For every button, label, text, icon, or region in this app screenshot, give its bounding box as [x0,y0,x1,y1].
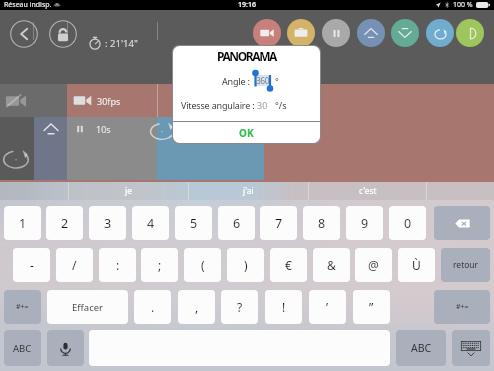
button[interactable]: Effacer [47,290,128,324]
button[interactable]: ? [221,290,258,324]
staticText: 7 [275,215,283,232]
button[interactable]: Take photo [287,19,315,47]
staticText: 360 [256,75,270,87]
button[interactable]: 9 [346,206,383,240]
button[interactable]: ( [184,248,221,282]
button[interactable] [67,117,157,180]
button[interactable]: Up [357,19,385,47]
staticText: ’ [326,299,329,315]
staticText: #+= [456,302,469,312]
staticText: 19:16 [238,0,256,10]
staticText: °/s [275,99,287,111]
button[interactable]: Rotate [426,19,454,47]
button[interactable]: Down [391,19,419,47]
staticText: - [30,257,34,273]
button[interactable]: ! [265,290,302,324]
staticText: : 21'14" [105,37,138,50]
staticText: ; [158,257,162,273]
button[interactable]: Ù [398,248,435,282]
button[interactable] [434,206,490,240]
staticText: ” [369,299,374,315]
button[interactable]: 6 [218,206,255,240]
staticText: 0 [404,215,412,232]
button[interactable]: . [134,290,171,324]
button[interactable]: : [99,248,136,282]
button[interactable]: c'est [309,182,426,200]
staticText: retour [453,259,479,271]
button[interactable]: retour [441,248,490,282]
button[interactable]: & [313,248,350,282]
staticText: 1 [19,215,27,232]
button[interactable]: ” [353,290,390,324]
staticText: je [125,185,132,197]
staticText: 100 % [453,0,473,10]
staticText: 4 [147,215,155,232]
button[interactable]: je [69,182,188,200]
button[interactable] [47,330,84,366]
button[interactable]: ’ [309,290,346,324]
button[interactable]: 7 [260,206,297,240]
button[interactable]: / [56,248,93,282]
staticText: ° [275,75,279,87]
staticText: : [116,257,120,273]
button[interactable]: - [13,248,50,282]
button[interactable]: 3 [89,206,126,240]
staticText: 9 [361,215,369,232]
staticText: PANORAMA [217,48,277,64]
staticText: j'ai [243,185,254,197]
staticText: @ [368,257,379,273]
button[interactable]: ; [141,248,178,282]
button[interactable]: j'ai [189,182,308,200]
staticText: 2 [61,215,69,232]
staticText: Vitesse angulaire : [181,99,255,111]
button[interactable]: 4 [132,206,169,240]
button[interactable]: #+= [434,290,490,324]
button[interactable]: #+= [4,290,41,324]
staticText: 5 [190,215,198,232]
button[interactable]: Record video [253,19,281,47]
button[interactable]: ABC [4,330,41,366]
staticText: ( [201,257,205,273]
button[interactable]: 1 [4,206,41,240]
staticText: 10s [96,123,111,135]
button[interactable]: ) [227,248,264,282]
staticText: ABC [13,342,32,355]
button[interactable]: OK [173,122,320,143]
button[interactable]: Camera off [0,84,67,117]
button[interactable]: Rotate view [157,117,264,180]
staticText: ? [237,299,243,315]
staticText: ! [282,299,286,315]
button[interactable]: 8 [303,206,340,240]
button[interactable]: Pause [322,19,350,47]
button[interactable]: Panorama [456,19,484,47]
staticText: Réseau indisp. [4,0,52,10]
staticText: / [72,257,77,273]
button[interactable]: Up [34,117,67,180]
button[interactable]: 2 [46,206,83,240]
staticText: ABC [411,341,432,355]
staticText: 6 [233,215,241,232]
staticText: Effacer [72,301,103,314]
staticText: 30 [257,99,268,111]
button[interactable]: ABC [396,330,446,366]
staticText: 30fps [97,95,121,107]
button[interactable]: Lock [49,20,77,48]
staticText: 3 [104,215,112,232]
staticText: c'est [359,185,377,197]
staticText: OK [239,126,254,140]
button[interactable]: € [270,248,307,282]
staticText: #+= [16,302,29,312]
button[interactable] [67,84,494,117]
button[interactable]: 0 [389,206,426,240]
staticText: & [327,257,336,273]
button[interactable]: , [178,290,215,324]
staticText: 8 [318,215,326,232]
button[interactable]: @ [355,248,392,282]
staticText: . [151,299,155,315]
button[interactable]: 5 [175,206,212,240]
staticText: , [195,299,199,315]
button[interactable]: Undo [0,117,34,180]
button[interactable] [452,330,490,366]
button[interactable]: Back [10,20,38,48]
